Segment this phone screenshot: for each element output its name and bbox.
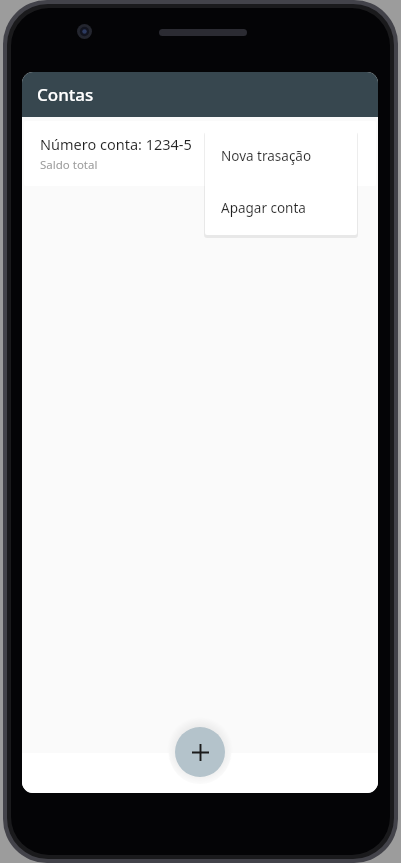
button[interactable]: Adicionar conta	[175, 727, 225, 777]
staticText: Número conta: 1234-5	[40, 134, 192, 154]
staticText: Nova trasação	[221, 147, 312, 165]
button[interactable]: Número conta: 1234-5	[24, 121, 376, 186]
staticText: Apagar conta	[221, 199, 306, 217]
button[interactable]: Apagar conta	[205, 182, 357, 234]
staticText: Contas	[37, 83, 94, 106]
staticText: Saldo total	[40, 157, 98, 173]
button[interactable]: Nova trasação	[205, 130, 357, 182]
